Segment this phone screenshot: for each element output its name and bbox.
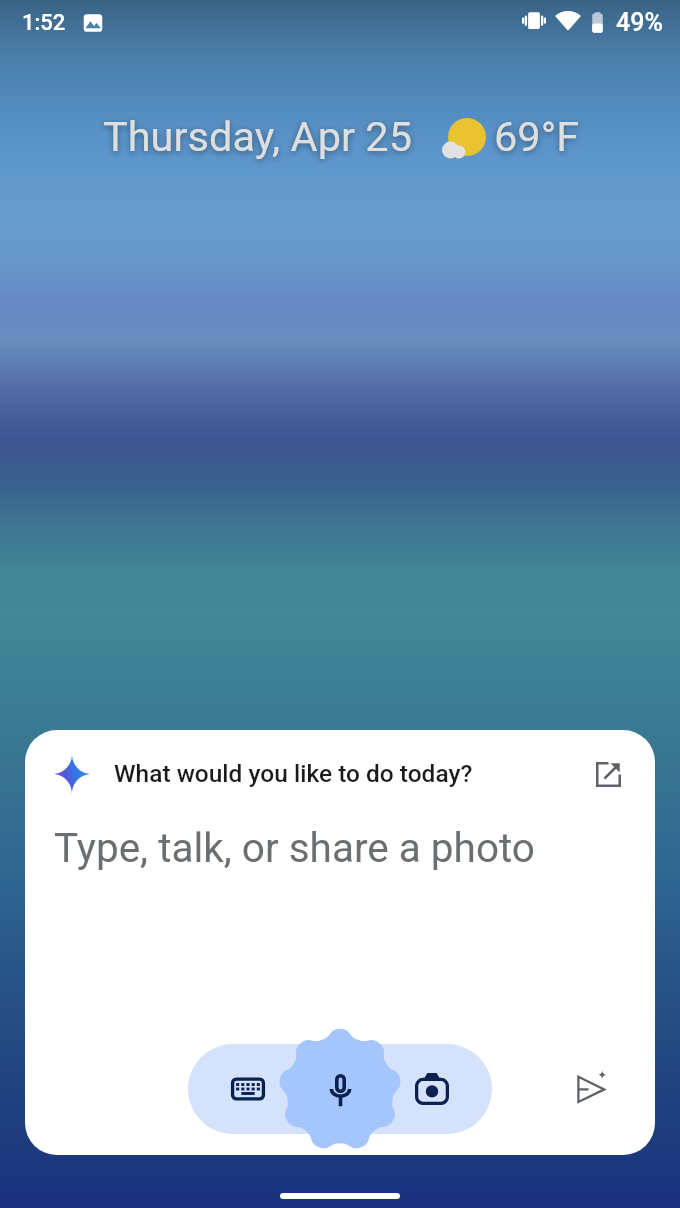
staticText: 69°F	[494, 112, 580, 161]
button[interactable]: Keyboard	[224, 1065, 272, 1113]
staticText: What would you like to do today?	[114, 759, 473, 788]
button[interactable]: Camera	[408, 1065, 456, 1113]
button[interactable]: Send	[568, 1063, 616, 1111]
button[interactable]: Open in full screen	[586, 752, 630, 796]
staticText: Thursday, Apr 25	[103, 112, 412, 161]
button[interactable]: Voice input	[279, 1029, 401, 1151]
staticText: 49%	[616, 8, 663, 37]
staticText: 1:52	[22, 10, 66, 36]
staticText: Type, talk, or share a photo	[54, 824, 535, 871]
